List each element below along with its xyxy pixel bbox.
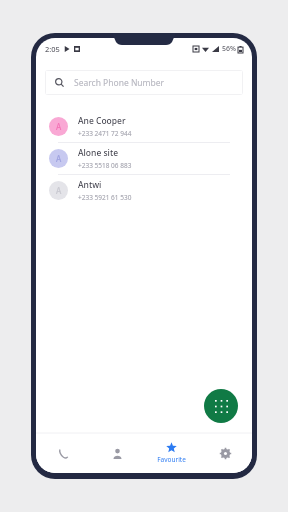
staticText: +233 5921 61 530 (78, 193, 132, 202)
staticText: +233 2471 72 944 (78, 129, 132, 138)
button[interactable]: Search Phone Number (45, 70, 243, 95)
staticText: A (56, 121, 62, 132)
button[interactable]: Favourite (144, 433, 198, 473)
staticText: Ane Cooper (78, 115, 126, 127)
staticText: 2:05 (45, 44, 60, 54)
staticText: Alone site (78, 147, 119, 159)
staticText: A (56, 185, 62, 196)
staticText: A (56, 153, 62, 164)
button[interactable]: Dialpad (204, 389, 238, 423)
staticText: Antwi (78, 179, 102, 191)
staticText: 56% (222, 44, 236, 54)
button[interactable]: A (36, 143, 252, 174)
staticText: Search Phone Number (74, 77, 165, 89)
staticText: +233 5518 06 883 (78, 161, 132, 170)
button[interactable]: A (36, 111, 252, 142)
button[interactable]: Calls (36, 433, 90, 473)
staticText: Favourite (157, 455, 186, 464)
button[interactable]: Contacts (90, 433, 144, 473)
button[interactable]: Settings (198, 433, 252, 473)
button[interactable]: A (36, 175, 252, 206)
